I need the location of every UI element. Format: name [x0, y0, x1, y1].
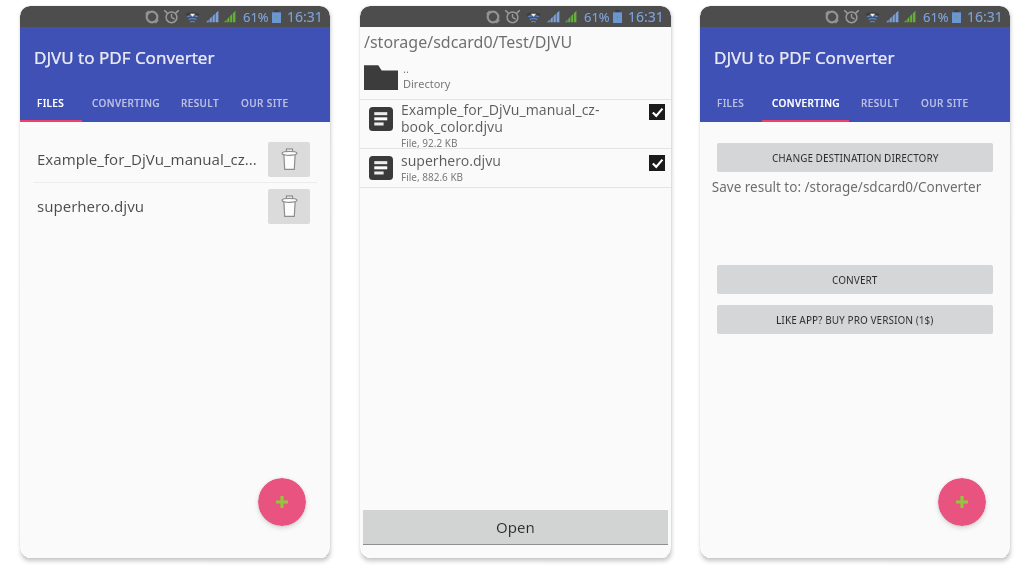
- staticText: RESULT: [181, 96, 219, 110]
- staticText: ..: [403, 61, 409, 76]
- staticText: File, 92.2 KB: [401, 136, 458, 148]
- staticText: DJVU to PDF Converter: [34, 46, 215, 69]
- button[interactable]: Example_for_DjVu_manual_cz...: [20, 136, 330, 182]
- staticText: 16:31: [967, 7, 1003, 26]
- button[interactable]: Add file: [938, 478, 986, 526]
- staticText: LIKE APP? BUY PRO VERSION (1$): [776, 313, 934, 327]
- staticText: OUR SITE: [241, 96, 289, 110]
- button[interactable]: Example_for_DjVu_manual_cz- book_color.d…: [360, 100, 671, 148]
- button[interactable]: superhero.djvu: [20, 183, 330, 229]
- staticText: superhero.djvu: [37, 196, 268, 216]
- staticText: /storage/sdcard0/Test/DJVU: [364, 31, 573, 53]
- button[interactable]: FILES: [700, 84, 762, 122]
- staticText: DJVU to PDF Converter: [714, 46, 895, 69]
- staticText: 16:31: [628, 7, 664, 26]
- staticText: Example_for_DjVu_manual_cz- book_color.d…: [401, 100, 600, 136]
- staticText: File, 882.6 KB: [401, 170, 464, 184]
- button[interactable]: Add file: [258, 478, 306, 526]
- staticText: CONVERTING: [92, 96, 160, 110]
- staticText: 61%: [584, 8, 610, 26]
- staticText: Save result to: /storage/sdcard0/Convert…: [700, 178, 993, 196]
- button[interactable]: OUR SITE: [230, 84, 300, 122]
- staticText: FILES: [37, 96, 65, 110]
- button[interactable]: Selected: [649, 104, 665, 120]
- button[interactable]: CHANGE DESTINATION DIRECTORY: [717, 143, 993, 172]
- button[interactable]: Delete: [268, 189, 310, 224]
- button[interactable]: Open: [363, 510, 668, 544]
- staticText: Open: [496, 517, 535, 537]
- staticText: CONVERT: [832, 273, 878, 287]
- staticText: RESULT: [861, 96, 899, 110]
- button[interactable]: Delete: [268, 142, 310, 177]
- button[interactable]: RESULT: [169, 84, 230, 122]
- staticText: OUR SITE: [921, 96, 969, 110]
- staticText: 61%: [923, 8, 949, 26]
- staticText: Example_for_DjVu_manual_cz...: [37, 149, 268, 169]
- staticText: CONVERTING: [772, 96, 840, 110]
- button[interactable]: CONVERT: [717, 265, 993, 294]
- staticText: CHANGE DESTINATION DIRECTORY: [772, 151, 939, 165]
- button[interactable]: CONVERTING: [762, 84, 849, 122]
- staticText: 16:31: [287, 7, 323, 26]
- staticText: FILES: [717, 96, 745, 110]
- staticText: Directory: [403, 76, 451, 91]
- button[interactable]: RESULT: [849, 84, 910, 122]
- button[interactable]: LIKE APP? BUY PRO VERSION (1$): [717, 305, 993, 334]
- staticText: 61%: [243, 8, 269, 26]
- button[interactable]: CONVERTING: [82, 84, 169, 122]
- button[interactable]: FILES: [20, 84, 82, 122]
- button[interactable]: ..: [360, 57, 671, 94]
- button[interactable]: Selected: [649, 155, 665, 171]
- button[interactable]: OUR SITE: [910, 84, 980, 122]
- button[interactable]: superhero.djvu: [360, 149, 671, 187]
- staticText: superhero.djvu: [401, 151, 501, 170]
